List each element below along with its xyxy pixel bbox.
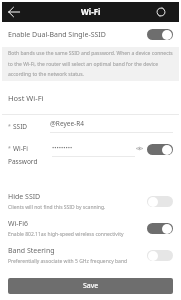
staticText: Preferentially associate with 5 GHz freq… bbox=[8, 258, 128, 265]
button[interactable]: Band Steering bbox=[2, 242, 179, 269]
button[interactable]: Refresh bbox=[154, 5, 168, 19]
button[interactable]: Back bbox=[6, 4, 22, 20]
button[interactable]: Show password bbox=[135, 144, 144, 153]
staticText: * bbox=[8, 123, 11, 130]
staticText: Save bbox=[83, 281, 99, 291]
button[interactable]: Toggle bbox=[147, 223, 173, 234]
staticText: Wi-Fi6 bbox=[8, 219, 29, 229]
staticText: Enable 802.11ax high-speed wireless conn… bbox=[8, 231, 124, 238]
staticText: @Reyee-R4 bbox=[50, 119, 84, 128]
button[interactable]: Toggle bbox=[147, 250, 173, 261]
button[interactable]: Wi-Fi6 bbox=[2, 215, 179, 242]
button[interactable]: Toggle bbox=[147, 29, 173, 40]
staticText: * bbox=[8, 145, 11, 152]
staticText: Wi-Fi bbox=[13, 144, 28, 153]
button[interactable]: * bbox=[2, 137, 179, 187]
staticText: Hide SSID bbox=[8, 192, 41, 202]
button[interactable]: Toggle bbox=[147, 196, 173, 207]
staticText: Enable Dual-Band Single-SSID bbox=[8, 30, 106, 40]
staticText: Both bands use the same SSID and passwor… bbox=[8, 50, 173, 78]
staticText: Password bbox=[8, 157, 38, 166]
button[interactable]: Enable Dual-Band Single-SSID bbox=[2, 22, 179, 47]
staticText: ••••••••• bbox=[52, 144, 73, 152]
staticText: Clients will not find this SSID by scann… bbox=[8, 204, 106, 211]
button[interactable]: Toggle bbox=[147, 144, 173, 155]
button[interactable]: Hide SSID bbox=[2, 187, 179, 215]
button[interactable]: * bbox=[2, 115, 179, 137]
staticText: Host Wi-Fi bbox=[8, 93, 44, 103]
button[interactable]: Save bbox=[8, 278, 173, 294]
staticText: Wi-Fi bbox=[81, 6, 101, 17]
staticText: Band Steering bbox=[8, 246, 55, 256]
staticText: SSID bbox=[13, 122, 28, 131]
